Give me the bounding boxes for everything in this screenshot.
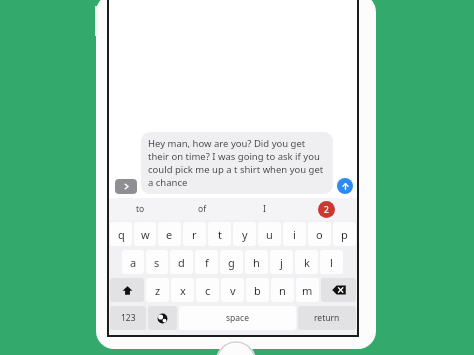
button[interactable]: Hey man, how are you? Did you get their … [141, 132, 333, 194]
button[interactable]: I [233, 198, 295, 220]
button[interactable]: 2 notifications [318, 201, 335, 218]
staticText: b [254, 283, 261, 298]
button[interactable]: Change keyboard language [148, 306, 177, 330]
button[interactable]: Backspace [321, 278, 356, 302]
staticText: c [205, 283, 211, 298]
button[interactable]: x [171, 278, 194, 302]
button[interactable]: m [296, 278, 319, 302]
staticText: j [280, 255, 283, 270]
button[interactable]: h [245, 250, 268, 274]
staticText: w [141, 227, 150, 242]
button[interactable]: j [270, 250, 293, 274]
staticText: z [155, 283, 161, 298]
staticText: a [130, 255, 137, 270]
staticText: l [330, 255, 333, 270]
button[interactable]: u [258, 222, 281, 246]
staticText: y [242, 227, 248, 242]
button[interactable]: q [110, 222, 132, 246]
button[interactable]: z [146, 278, 169, 302]
staticText: t [218, 227, 222, 242]
staticText: d [178, 255, 185, 270]
staticText: Hey man, how are you? Did you get their … [148, 137, 326, 189]
staticText: i [293, 227, 296, 242]
staticText: 123 [121, 312, 136, 324]
button[interactable]: b [246, 278, 269, 302]
button[interactable]: Shift [110, 278, 144, 302]
button[interactable]: y [233, 222, 256, 246]
staticText: f [205, 255, 209, 270]
staticText: m [302, 283, 313, 298]
button[interactable]: o [308, 222, 331, 246]
staticText: h [253, 255, 260, 270]
button[interactable]: v [221, 278, 244, 302]
staticText: v [230, 283, 236, 298]
button[interactable]: n [271, 278, 294, 302]
staticText: return [314, 312, 340, 324]
staticText: s [154, 255, 160, 270]
button[interactable]: t [208, 222, 231, 246]
button[interactable]: s [146, 250, 168, 274]
button[interactable]: Send [337, 178, 353, 194]
button[interactable]: i [283, 222, 306, 246]
button[interactable]: Expand [115, 179, 137, 194]
staticText: q [118, 227, 125, 242]
staticText: p [341, 227, 348, 242]
button[interactable]: r [183, 222, 206, 246]
staticText: to [136, 203, 145, 215]
staticText: 2 [324, 204, 329, 216]
button[interactable]: c [196, 278, 219, 302]
staticText: g [228, 255, 235, 270]
button[interactable]: f [195, 250, 218, 274]
staticText: x [180, 283, 186, 298]
button[interactable]: k [295, 250, 318, 274]
staticText: u [266, 227, 273, 242]
staticText: r [192, 227, 197, 242]
button[interactable]: space [179, 306, 296, 330]
button[interactable]: p [333, 222, 356, 246]
staticText: I [263, 203, 266, 215]
button[interactable]: to [109, 198, 171, 220]
button[interactable]: return [298, 306, 356, 330]
button[interactable]: w [134, 222, 156, 246]
button[interactable]: l [320, 250, 343, 274]
staticText: n [279, 283, 286, 298]
staticText: space [226, 312, 249, 324]
staticText: of [198, 203, 207, 215]
staticText: e [166, 227, 173, 242]
button[interactable]: g [220, 250, 243, 274]
button[interactable]: d [170, 250, 193, 274]
button[interactable]: e [158, 222, 181, 246]
staticText: k [304, 255, 310, 270]
staticText: o [316, 227, 323, 242]
button[interactable]: of [171, 198, 233, 220]
button[interactable]: 123 [110, 306, 146, 330]
button[interactable]: a [122, 250, 144, 274]
